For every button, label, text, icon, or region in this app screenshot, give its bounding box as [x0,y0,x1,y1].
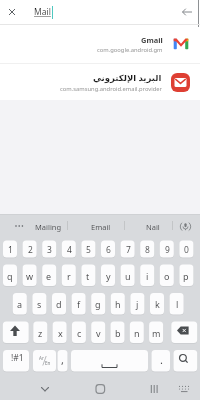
button[interactable]: 0 [178,241,194,258]
staticText: Email [91,222,111,232]
button[interactable]: 4 [61,241,77,258]
staticText: 7 [126,244,131,256]
staticText: w [26,270,34,282]
button[interactable]: y [100,265,116,287]
staticText: s [37,298,42,310]
staticText: Mail [34,6,51,18]
button[interactable]: a [12,293,28,315]
button[interactable]: Mailing [23,216,73,237]
button[interactable]: k [149,293,165,315]
button[interactable] [0,0,24,24]
button[interactable]: f [71,293,87,315]
button[interactable]: g [90,293,106,315]
staticText: y [106,270,111,282]
staticText: com.samsung.android.email.provider [60,85,162,93]
staticText: u [125,270,131,282]
button[interactable]: . [153,348,169,370]
button[interactable]: u [120,265,136,287]
staticText: p [183,270,189,282]
button[interactable]: z [32,322,48,344]
staticText: o [164,270,170,282]
staticText: i [146,270,149,282]
staticText: Nail [146,222,160,232]
staticText: x [58,327,63,339]
button[interactable]: s [31,293,47,315]
staticText: , [61,352,64,367]
button[interactable]: 6 [100,241,116,258]
staticText: m [152,327,161,339]
button[interactable] [12,219,26,233]
button[interactable] [50,376,100,400]
button[interactable]: n [129,322,145,344]
button[interactable] [0,376,50,400]
button[interactable]: j [129,293,145,315]
staticText: r [67,270,71,282]
button[interactable]: , [54,348,70,370]
staticText: 6 [106,244,111,256]
button[interactable]: h [110,293,126,315]
button[interactable]: 2 [22,241,38,258]
button[interactable]: p [178,265,194,287]
button[interactable]: m [148,322,164,344]
button[interactable]: 7 [120,241,136,258]
staticText: 3 [47,244,52,256]
staticText: En [45,360,51,366]
button[interactable]: t [80,265,96,287]
staticText: Gmail [141,35,163,45]
button[interactable]: x [52,322,68,344]
button[interactable]: البريد الإلكتروني [0,64,200,100]
button[interactable] [150,376,200,400]
button[interactable]: v [90,322,106,344]
button[interactable]: Ar [33,350,56,372]
button[interactable]: e [41,265,57,287]
button[interactable]: 8 [139,241,155,258]
staticText: b [115,327,121,339]
staticText: Ar [39,355,44,361]
staticText: j [136,298,139,310]
button[interactable]: Gmail [0,25,200,63]
staticText: z [38,327,43,339]
staticText: . [160,352,163,367]
button[interactable]: r [61,265,77,287]
staticText: l [176,298,179,310]
staticText: 9 [165,244,170,256]
staticText: t [86,270,90,282]
staticText: v [96,327,101,339]
button[interactable]: 5 [80,241,96,258]
staticText: 5 [86,244,91,256]
button[interactable]: Email [76,216,126,237]
button[interactable]: i [139,265,155,287]
staticText: g [95,298,101,310]
button[interactable]: q [2,265,18,287]
staticText: 0 [184,244,189,256]
staticText: 1 [8,244,13,256]
staticText: a [17,298,23,310]
staticText: e [46,270,52,282]
button[interactable]: d [51,293,67,315]
button[interactable]: w [22,265,38,287]
button[interactable]: c [71,322,87,344]
staticText: q [7,270,13,282]
button[interactable]: 9 [159,241,175,258]
staticText: 2 [28,244,33,256]
staticText: c [77,327,82,339]
staticText: f [77,298,81,310]
staticText: 4 [67,244,72,256]
button[interactable] [100,376,150,400]
staticText: d [56,298,62,310]
button[interactable]: 1 [2,241,18,258]
staticText: 8 [145,244,150,256]
button[interactable]: 3 [41,241,57,258]
button[interactable]: o [159,265,175,287]
button[interactable]: b [110,322,126,344]
staticText: !#1 [11,352,24,364]
button[interactable] [174,0,200,24]
button[interactable]: l [169,293,185,315]
staticText: Mailing [35,222,62,232]
button[interactable]: !#1 [9,347,25,369]
staticText: البريد الإلكتروني [93,72,162,84]
staticText: com.google.android.gm [97,46,163,54]
staticText: n [134,327,140,339]
button[interactable] [177,218,193,234]
button[interactable]: Nail [128,216,178,237]
